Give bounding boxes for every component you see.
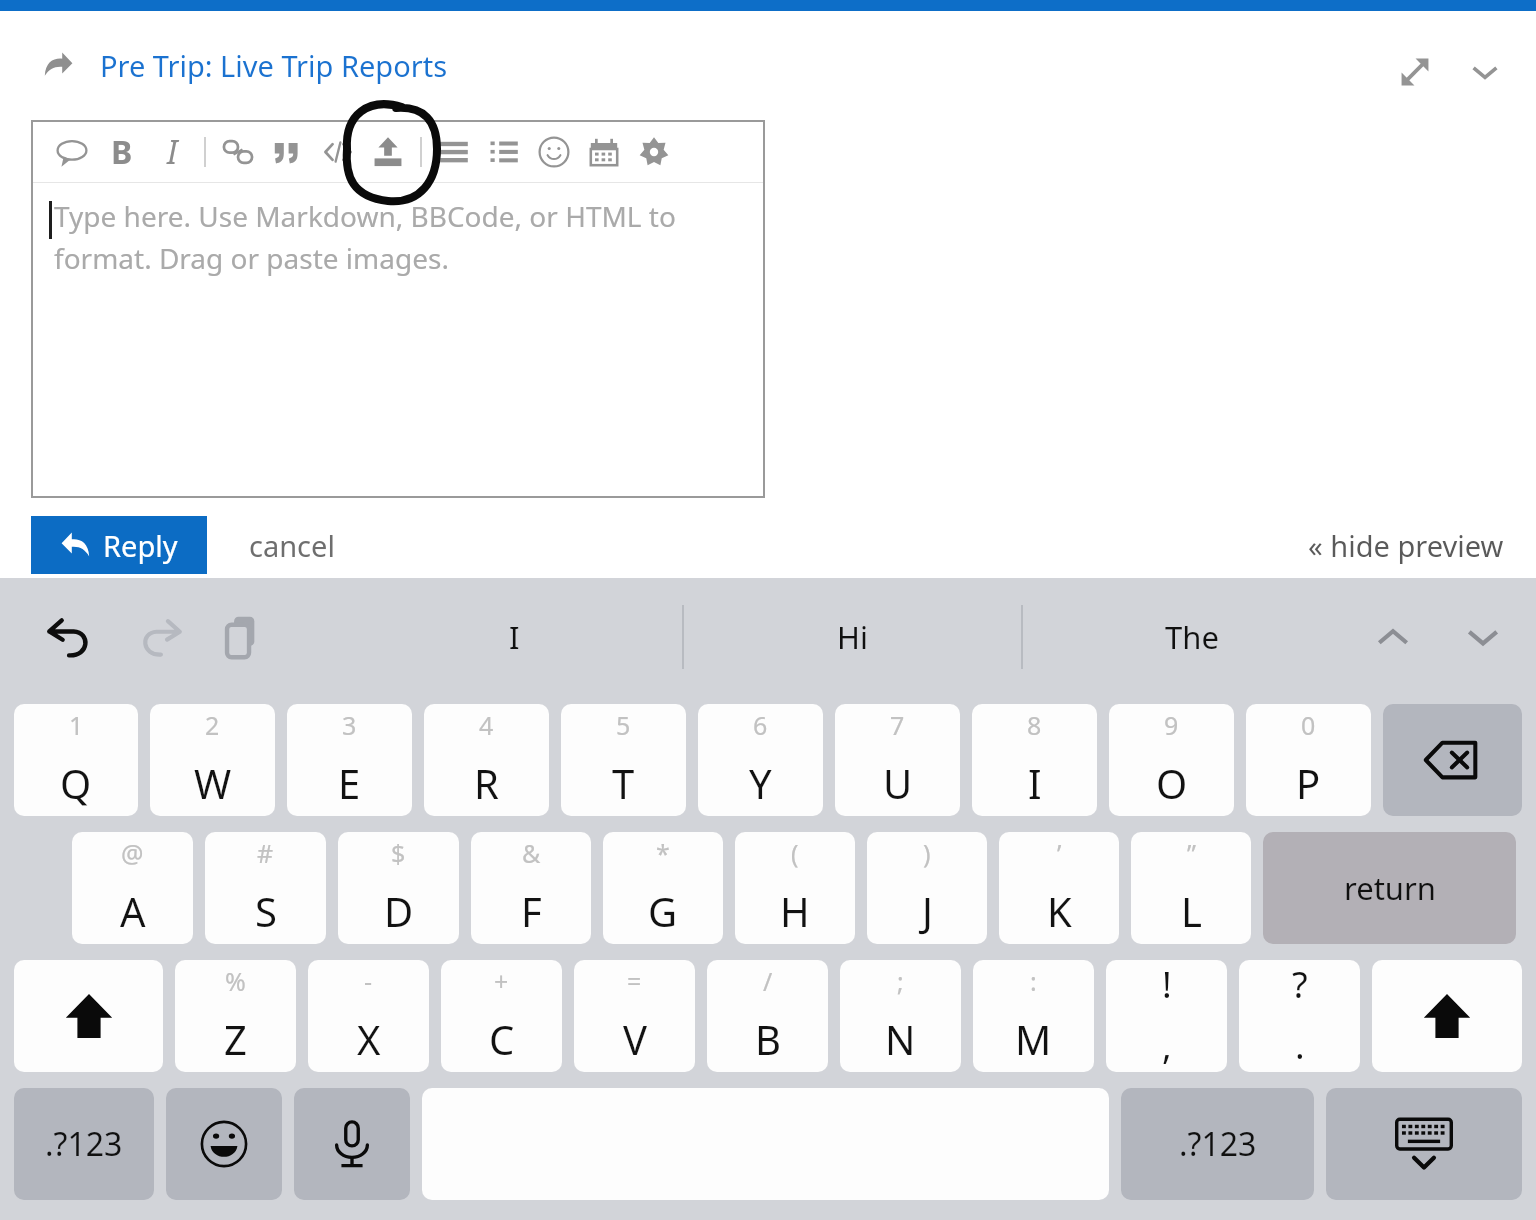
button[interactable]: Comment	[47, 127, 97, 177]
staticText: )	[923, 836, 931, 870]
button[interactable]: Italic	[147, 127, 197, 177]
staticText: ;	[897, 964, 904, 998]
staticText: 8	[1027, 708, 1042, 742]
button[interactable]: ?	[1239, 960, 1360, 1072]
staticText: return	[1344, 867, 1436, 909]
button[interactable]: Shift	[1372, 960, 1522, 1072]
button[interactable]: Bold	[97, 127, 147, 177]
button[interactable]: Code	[313, 127, 363, 177]
button[interactable]: Insert link	[213, 127, 263, 177]
button[interactable]: « hide preview	[1308, 526, 1536, 565]
button[interactable]: 8	[972, 704, 1097, 816]
button[interactable]: Numbers and symbols	[14, 1088, 154, 1200]
staticText: S	[255, 884, 277, 938]
staticText: E	[338, 756, 361, 810]
button[interactable]: Undo	[36, 603, 104, 671]
button[interactable]: Hide keyboard	[1326, 1088, 1522, 1200]
button[interactable]: /	[707, 960, 828, 1072]
button[interactable]: Collapse editor	[1458, 45, 1512, 99]
button[interactable]: ’	[999, 832, 1119, 944]
button[interactable]: Pre Trip: Live Trip Reports	[100, 46, 448, 85]
button[interactable]: Redo	[126, 603, 194, 671]
staticText: T	[612, 756, 635, 810]
button[interactable]: Quote	[263, 127, 313, 177]
button[interactable]: Return	[1263, 832, 1516, 944]
staticText: -	[364, 964, 373, 998]
staticText: U	[883, 756, 913, 810]
button[interactable]: @	[72, 832, 193, 944]
staticText: A	[120, 884, 146, 938]
staticText: /	[763, 964, 773, 998]
staticText: .?123	[1179, 1122, 1257, 1166]
staticText: X	[357, 1012, 381, 1066]
button[interactable]: cancel	[249, 526, 335, 565]
button[interactable]: 3	[287, 704, 412, 816]
button[interactable]: *	[603, 832, 723, 944]
staticText: 6	[753, 708, 768, 742]
button[interactable]: Calendar	[579, 127, 629, 177]
staticText: Type here. Use Markdown, BBCode, or HTML…	[54, 197, 676, 277]
staticText: ’	[1057, 836, 1062, 870]
button[interactable]: Expand editor	[1388, 45, 1442, 99]
button[interactable]: %	[175, 960, 296, 1072]
button[interactable]: Hi	[684, 578, 1021, 696]
staticText: Reply	[103, 526, 178, 565]
staticText: J	[922, 884, 933, 938]
button[interactable]: )	[867, 832, 987, 944]
staticText: Q	[60, 756, 92, 810]
staticText: (	[791, 836, 799, 870]
button[interactable]: :	[973, 960, 1094, 1072]
button[interactable]: 4	[424, 704, 549, 816]
staticText: B	[111, 130, 133, 174]
button[interactable]: Reply to topic	[32, 39, 84, 91]
button[interactable]: ”	[1131, 832, 1251, 944]
button[interactable]: Shift	[14, 960, 163, 1072]
button[interactable]: -	[308, 960, 429, 1072]
button[interactable]: Bulleted list	[429, 127, 479, 177]
staticText: F	[521, 884, 542, 938]
button[interactable]: 6	[698, 704, 823, 816]
button[interactable]: Emoji	[166, 1088, 282, 1200]
button[interactable]: 1	[14, 704, 138, 816]
button[interactable]: Numbered list	[479, 127, 529, 177]
staticText: O	[1156, 756, 1188, 810]
staticText: 3	[342, 708, 357, 742]
staticText: 4	[479, 708, 494, 742]
staticText: 7	[890, 708, 905, 742]
button[interactable]: The	[1023, 578, 1360, 696]
button[interactable]: +	[441, 960, 562, 1072]
staticText: P	[1296, 756, 1321, 810]
button[interactable]: ;	[840, 960, 961, 1072]
staticText: $	[391, 836, 406, 870]
button[interactable]: 2	[150, 704, 275, 816]
button[interactable]: $	[338, 832, 459, 944]
button[interactable]: Settings	[629, 127, 679, 177]
button[interactable]: 5	[561, 704, 686, 816]
button[interactable]: 7	[835, 704, 960, 816]
staticText: G	[648, 884, 678, 938]
button[interactable]: #	[205, 832, 326, 944]
button[interactable]: 9	[1109, 704, 1234, 816]
button[interactable]: (	[735, 832, 855, 944]
staticText: C	[489, 1012, 515, 1066]
button[interactable]: Reply	[31, 516, 207, 574]
button[interactable]: I	[346, 578, 682, 696]
staticText: &	[522, 836, 541, 870]
button[interactable]: 0	[1246, 704, 1371, 816]
button[interactable]: Clipboard	[208, 603, 276, 671]
button[interactable]: =	[574, 960, 695, 1072]
button[interactable]: Numbers and symbols	[1121, 1088, 1314, 1200]
staticText: D	[384, 884, 414, 938]
staticText: =	[627, 964, 642, 998]
button[interactable]: Previous suggestion	[1360, 604, 1426, 670]
button[interactable]: Next suggestion	[1450, 604, 1516, 670]
button[interactable]: Voice input	[294, 1088, 410, 1200]
button[interactable]: Upload image	[363, 127, 413, 177]
staticText: N	[885, 1012, 916, 1066]
button[interactable]: Emoji	[529, 127, 579, 177]
button[interactable]: Backspace	[1383, 704, 1522, 816]
button[interactable]: &	[471, 832, 591, 944]
button[interactable]: !	[1106, 960, 1227, 1072]
staticText: W	[194, 756, 232, 810]
